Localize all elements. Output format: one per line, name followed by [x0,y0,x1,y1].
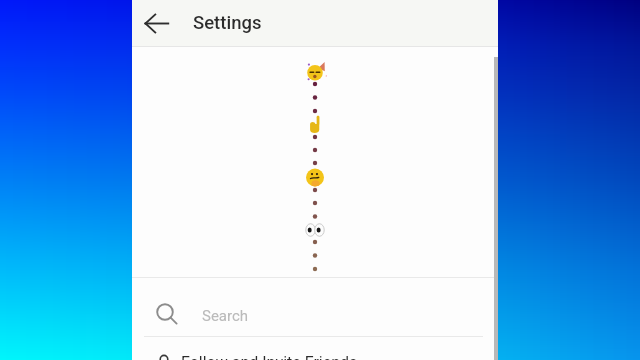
button[interactable]: Follow and Invite Friends [132,337,498,360]
button[interactable]: Search [132,278,498,336]
staticText: Settings [193,12,262,34]
staticText: Follow and Invite Friends [181,353,358,360]
button[interactable]: Navigate back [134,1,178,45]
staticText: Search [202,307,249,325]
